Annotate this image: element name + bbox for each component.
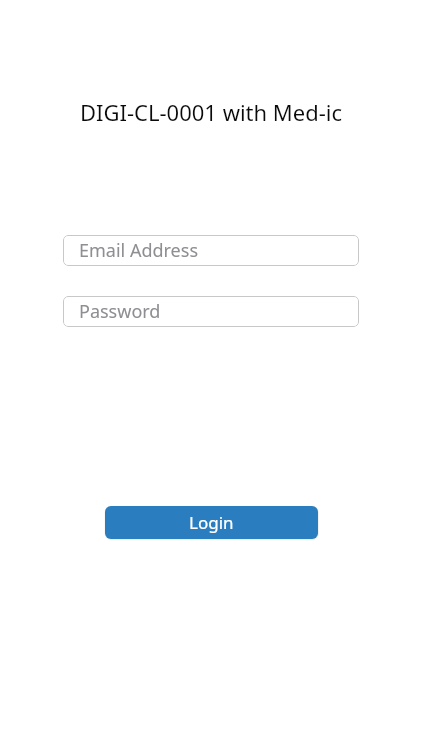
button[interactable]: Login <box>105 506 318 539</box>
staticText: Login <box>189 511 234 534</box>
button[interactable]: Password <box>63 296 359 327</box>
staticText: DIGI-CL-0001 with Med-ic <box>80 97 343 127</box>
staticText: Email Address <box>79 238 199 263</box>
button[interactable]: Email Address <box>63 235 359 266</box>
staticText: Password <box>79 299 161 324</box>
